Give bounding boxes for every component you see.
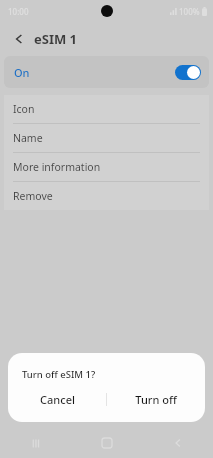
staticText: Turn off eSIM 1? <box>22 368 96 381</box>
staticText: eSIM 1 <box>34 30 78 48</box>
staticText: Turn off <box>135 392 177 407</box>
button[interactable]: Icon <box>4 95 209 123</box>
button[interactable]: More information <box>4 153 209 181</box>
staticText: On <box>14 65 175 80</box>
staticText: Cancel <box>40 392 75 407</box>
staticText: Name <box>13 131 43 145</box>
button[interactable]: Remove <box>4 182 209 210</box>
staticText: More information <box>13 160 101 174</box>
button[interactable]: Back <box>9 29 29 49</box>
button[interactable]: Cancel <box>8 386 106 412</box>
staticText: Remove <box>13 189 53 203</box>
button[interactable]: Turn off <box>107 386 205 412</box>
staticText: Icon <box>13 102 35 116</box>
staticText: 10:00 <box>8 6 29 17</box>
button[interactable]: Name <box>4 124 209 152</box>
staticText: 100% <box>179 6 200 17</box>
button[interactable]: On <box>4 56 209 88</box>
